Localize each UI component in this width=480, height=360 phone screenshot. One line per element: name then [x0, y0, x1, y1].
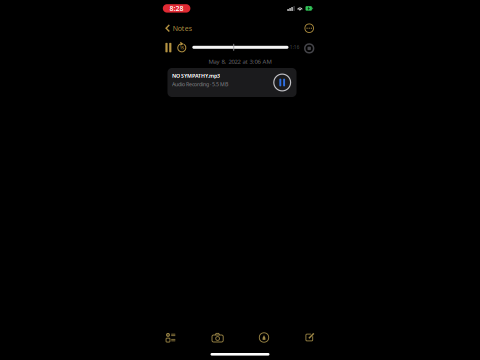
button[interactable]: Checklist: [159, 331, 183, 344]
button[interactable]: Camera: [206, 331, 230, 344]
button[interactable]: Pause: [165, 43, 171, 52]
button[interactable]: More: [303, 22, 316, 35]
staticText: 8:28: [170, 4, 184, 13]
button[interactable]: New note: [297, 331, 321, 344]
staticText: Notes: [173, 23, 192, 33]
staticText: 1:16: [290, 44, 300, 50]
button[interactable]: Stop playback: [304, 43, 314, 54]
staticText: NO SYMPATHY.mp3: [172, 72, 220, 79]
button[interactable]: Skip back 15 seconds: [177, 43, 187, 53]
staticText: May 8, 2022 at 3:06 AM: [208, 57, 271, 66]
button[interactable]: NO SYMPATHY.mp3: [167, 68, 296, 97]
staticText: 15: [180, 45, 184, 50]
button[interactable]: Notes: [162, 21, 195, 35]
staticText: Audio Recording · 5.5 MB: [172, 81, 228, 88]
button[interactable]: Markup: [252, 331, 276, 344]
